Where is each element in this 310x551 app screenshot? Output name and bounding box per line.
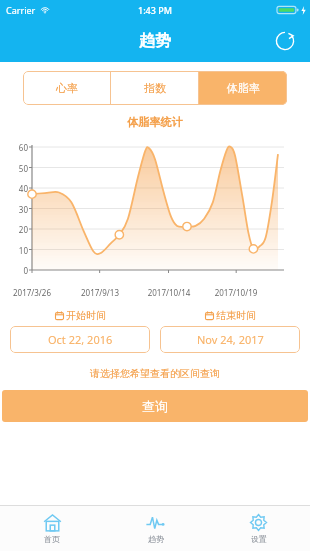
staticText: Nov 24, 2017 [197,332,264,347]
staticText: 心率 [56,81,78,95]
button[interactable]: 体脂率 [199,71,287,105]
staticText: 40 [4,183,28,194]
staticText: 1:43 PM [138,4,172,16]
staticText: 10 [4,245,28,256]
staticText: 20 [4,224,28,235]
staticText: 请选择您希望查看的区间查询 [0,367,310,380]
staticText: Carrier [6,4,36,16]
staticText: 趋势 [148,534,164,544]
button[interactable]: 首页 [0,506,104,551]
staticText: 查询 [142,398,168,414]
staticText: 2017/10/19 [206,287,266,298]
staticText: 2017/3/26 [2,287,62,298]
staticText: 体脂率 [227,81,260,95]
staticText: 设置 [251,534,267,544]
button[interactable]: 心率 [23,71,111,105]
staticText: 30 [4,204,28,215]
button[interactable]: Nov 24, 2017 [160,326,300,353]
button[interactable]: 趋势 [104,506,207,551]
staticText: 开始时间 [66,309,106,322]
button[interactable]: Refresh [272,28,298,54]
button[interactable]: 设置 [207,506,310,551]
staticText: 2017/9/13 [70,287,130,298]
staticText: 体脂率统计 [0,115,310,129]
staticText: 趋势 [139,31,171,51]
button[interactable]: Oct 22, 2016 [10,326,150,353]
staticText: 2017/10/14 [139,287,199,298]
staticText: Oct 22, 2016 [48,332,113,347]
staticText: 60 [4,142,28,153]
staticText: 指数 [144,81,166,95]
button[interactable]: 查询 [2,390,308,422]
staticText: 0 [4,265,28,276]
staticText: 首页 [44,534,60,544]
button[interactable]: 指数 [111,71,199,105]
staticText: 50 [4,163,28,174]
staticText: 结束时间 [216,309,256,322]
